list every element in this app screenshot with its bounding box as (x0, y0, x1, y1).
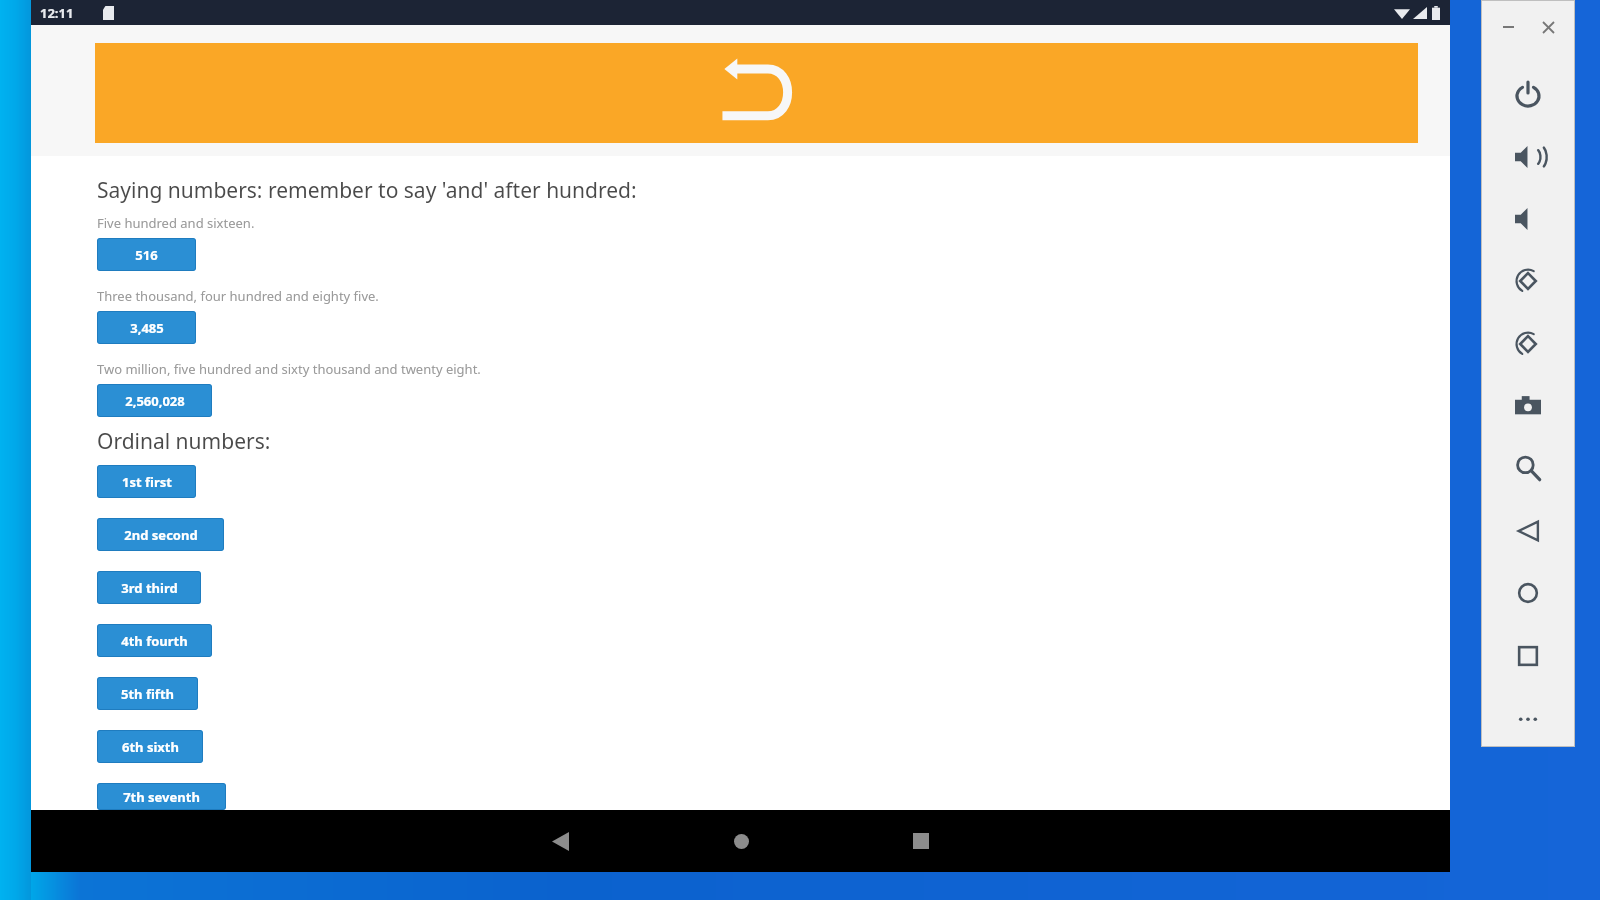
staticText: Two million, five hundred and sixty thou… (97, 360, 481, 378)
button[interactable]: Close (1531, 14, 1565, 40)
button[interactable]: Rotate left (1481, 250, 1575, 312)
staticText: Ordinal numbers: (97, 427, 271, 456)
button[interactable]: Minimize (1491, 14, 1525, 40)
button[interactable]: 3,485 (97, 311, 196, 344)
button[interactable]: 4th fourth (97, 624, 212, 657)
button[interactable]: 3rd third (97, 571, 201, 604)
button[interactable]: More (1481, 687, 1575, 749)
button[interactable]: 7th seventh (97, 783, 226, 810)
staticText: 1st first (122, 473, 172, 491)
button[interactable]: Volume up (1481, 126, 1575, 188)
button[interactable]: Rotate right (1481, 313, 1575, 375)
button[interactable]: 5th fifth (97, 677, 198, 710)
staticText: 12:11 (40, 4, 74, 22)
button[interactable]: 2nd second (97, 518, 224, 551)
staticText: 5th fifth (121, 685, 174, 703)
staticText: 6th sixth (122, 738, 179, 756)
staticText: Saying numbers: remember to say 'and' af… (97, 176, 637, 205)
staticText: 516 (135, 246, 158, 264)
button[interactable]: Zoom (1481, 437, 1575, 499)
button[interactable]: Back (1481, 500, 1575, 562)
button[interactable]: Power (1481, 64, 1575, 126)
button[interactable]: Home (712, 812, 770, 870)
button[interactable]: Back (95, 43, 1418, 143)
button[interactable]: Recent apps (892, 812, 950, 870)
staticText: 2,560,028 (125, 392, 185, 410)
button[interactable]: 1st first (97, 465, 196, 498)
staticText: Three thousand, four hundred and eighty … (97, 287, 379, 305)
staticText: 4th fourth (121, 632, 188, 650)
button[interactable]: Back (531, 812, 589, 870)
button[interactable]: 2,560,028 (97, 384, 212, 417)
staticText: 2nd second (124, 526, 198, 544)
staticText: 3rd third (121, 579, 178, 597)
staticText: Five hundred and sixteen. (97, 214, 255, 232)
button[interactable]: 6th sixth (97, 730, 203, 763)
button[interactable]: Volume down (1481, 188, 1575, 250)
button[interactable]: Recent apps (1481, 625, 1575, 687)
button[interactable]: Home (1481, 562, 1575, 624)
staticText: 3,485 (130, 319, 164, 337)
button[interactable]: 516 (97, 238, 196, 271)
button[interactable]: Take screenshot (1481, 375, 1575, 437)
staticText: 7th seventh (123, 788, 200, 806)
